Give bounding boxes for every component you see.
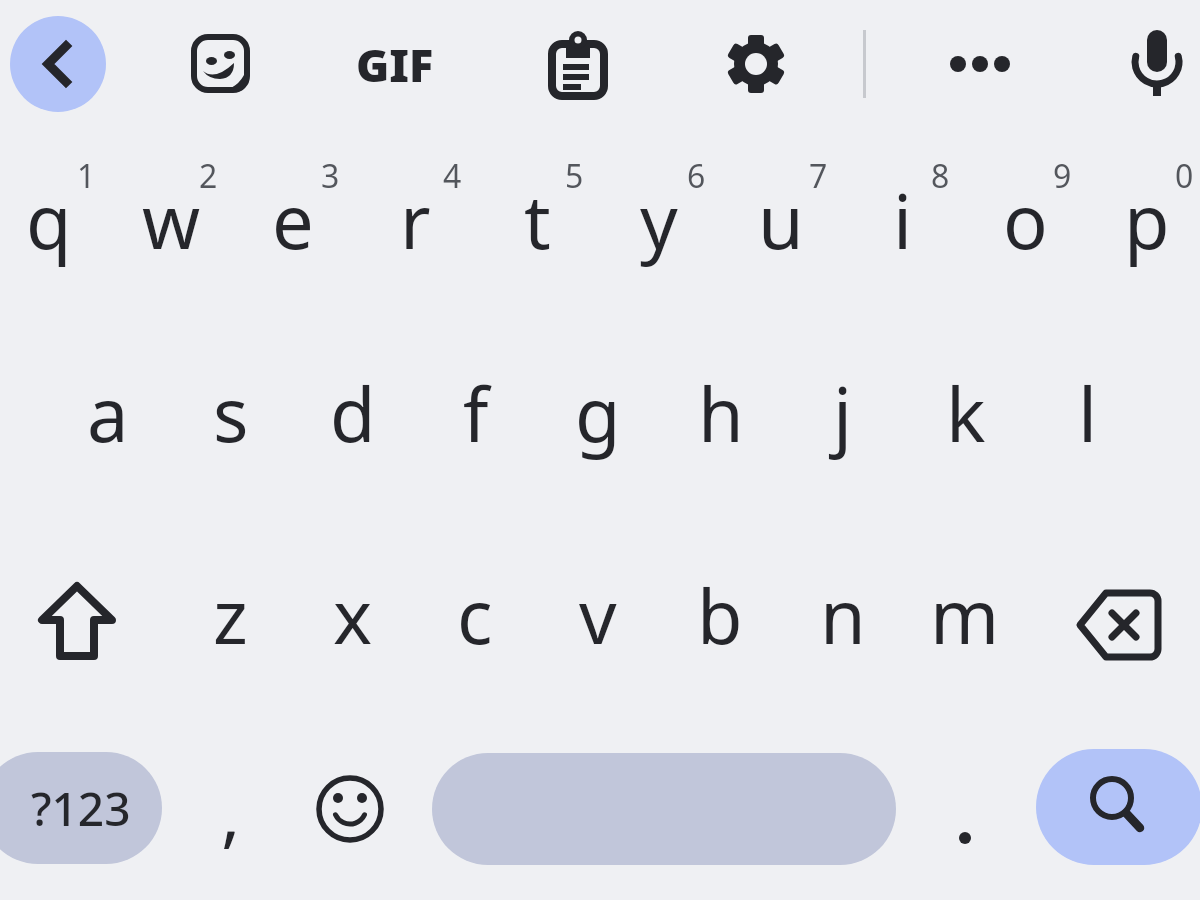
staticText: e — [272, 170, 314, 271]
staticText: p — [1124, 170, 1170, 271]
button[interactable]: e — [234, 145, 352, 295]
staticText: w — [142, 170, 201, 271]
staticText: r — [400, 170, 431, 271]
button[interactable] — [432, 753, 896, 865]
staticText: ?123 — [31, 777, 131, 840]
button[interactable] — [10, 16, 106, 112]
button[interactable]: w — [112, 145, 230, 295]
staticText: 8 — [931, 154, 950, 198]
staticText: m — [930, 565, 1000, 666]
button[interactable]: r — [356, 145, 474, 295]
button[interactable]: d — [294, 338, 412, 488]
button[interactable]: z — [171, 540, 289, 690]
staticText: GIF — [356, 34, 434, 94]
button[interactable]: h — [662, 338, 780, 488]
button[interactable]: , — [186, 747, 276, 877]
button[interactable] — [920, 764, 1010, 854]
staticText: 4 — [443, 154, 462, 198]
staticText: 2 — [199, 154, 218, 198]
button[interactable]: p — [1088, 145, 1200, 295]
button[interactable]: v — [539, 540, 657, 690]
staticText: a — [87, 363, 129, 464]
staticText: c — [457, 565, 493, 666]
staticText: , — [221, 763, 241, 861]
button[interactable]: u — [722, 145, 840, 295]
button[interactable]: g — [539, 338, 657, 488]
staticText: l — [1078, 363, 1098, 464]
staticText: 0 — [1175, 154, 1194, 198]
staticText: 5 — [565, 154, 584, 198]
staticText: h — [698, 363, 744, 464]
staticText: b — [697, 565, 743, 666]
button[interactable]: t — [478, 145, 596, 295]
staticText: x — [333, 565, 373, 666]
button[interactable] — [548, 32, 608, 98]
button[interactable]: c — [416, 540, 534, 690]
staticText: 6 — [687, 154, 706, 198]
staticText: 3 — [321, 154, 340, 198]
staticText: 9 — [1053, 154, 1072, 198]
button[interactable]: i — [844, 145, 962, 295]
button[interactable]: b — [661, 540, 779, 690]
staticText: d — [330, 363, 376, 464]
button[interactable] — [726, 33, 786, 93]
button[interactable] — [1036, 749, 1200, 865]
staticText: v — [579, 565, 617, 666]
button[interactable] — [1062, 575, 1176, 675]
button[interactable] — [1120, 20, 1194, 110]
button[interactable]: j — [784, 338, 902, 488]
staticText: z — [213, 565, 248, 666]
button[interactable]: s — [172, 338, 290, 488]
staticText: 1 — [77, 154, 96, 198]
button[interactable] — [20, 572, 134, 684]
button[interactable]: l — [1029, 338, 1147, 488]
staticText: n — [820, 565, 866, 666]
staticText: 7 — [809, 154, 828, 198]
button[interactable]: x — [294, 540, 412, 690]
staticText: s — [213, 363, 249, 464]
staticText: i — [893, 170, 913, 271]
staticText: o — [1003, 170, 1048, 271]
button[interactable]: k — [907, 338, 1025, 488]
button[interactable]: m — [906, 540, 1024, 690]
button[interactable]: a — [49, 338, 167, 488]
staticText: u — [758, 170, 804, 271]
staticText: q — [26, 170, 72, 271]
button[interactable] — [305, 764, 395, 854]
button[interactable] — [190, 34, 250, 94]
staticText: f — [463, 363, 489, 464]
staticText: k — [946, 363, 986, 464]
button[interactable]: n — [784, 540, 902, 690]
button[interactable]: y — [600, 145, 718, 295]
button[interactable]: f — [417, 338, 535, 488]
button[interactable]: ?123 — [0, 752, 162, 864]
button[interactable]: GIF — [345, 34, 445, 94]
button[interactable] — [940, 44, 1020, 84]
staticText: t — [524, 170, 551, 271]
staticText: g — [575, 363, 621, 464]
button[interactable]: q — [0, 145, 108, 295]
button[interactable]: o — [966, 145, 1084, 295]
staticText: y — [640, 170, 678, 271]
staticText: j — [833, 363, 853, 464]
